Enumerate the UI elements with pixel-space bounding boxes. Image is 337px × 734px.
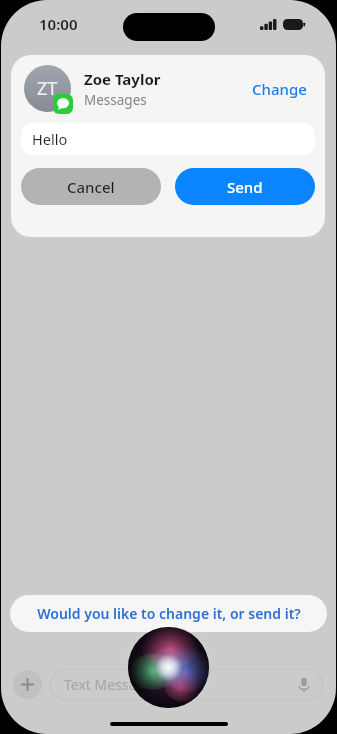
staticText: Would you like to change it, or send it? <box>37 604 301 623</box>
button[interactable]: Text Message <box>50 669 323 700</box>
button[interactable]: Would you like to change it, or send it? <box>10 595 327 632</box>
button[interactable]: Hello <box>21 123 315 155</box>
staticText: Zoe Taylor <box>84 69 161 89</box>
staticText: Send <box>227 177 263 197</box>
staticText: Change <box>252 79 307 99</box>
staticText: Messages <box>84 91 147 109</box>
button[interactable]: Send <box>175 168 315 205</box>
button[interactable]: Add attachment <box>13 670 42 699</box>
button[interactable]: Cancel <box>21 168 161 205</box>
button[interactable]: Change <box>248 75 311 103</box>
other: Dictate <box>296 677 312 693</box>
staticText: ZT <box>37 76 58 101</box>
staticText: Text Message <box>64 675 153 694</box>
staticText: 10:00 <box>39 14 78 34</box>
staticText: Cancel <box>67 177 115 197</box>
staticText: Hello <box>32 129 68 149</box>
